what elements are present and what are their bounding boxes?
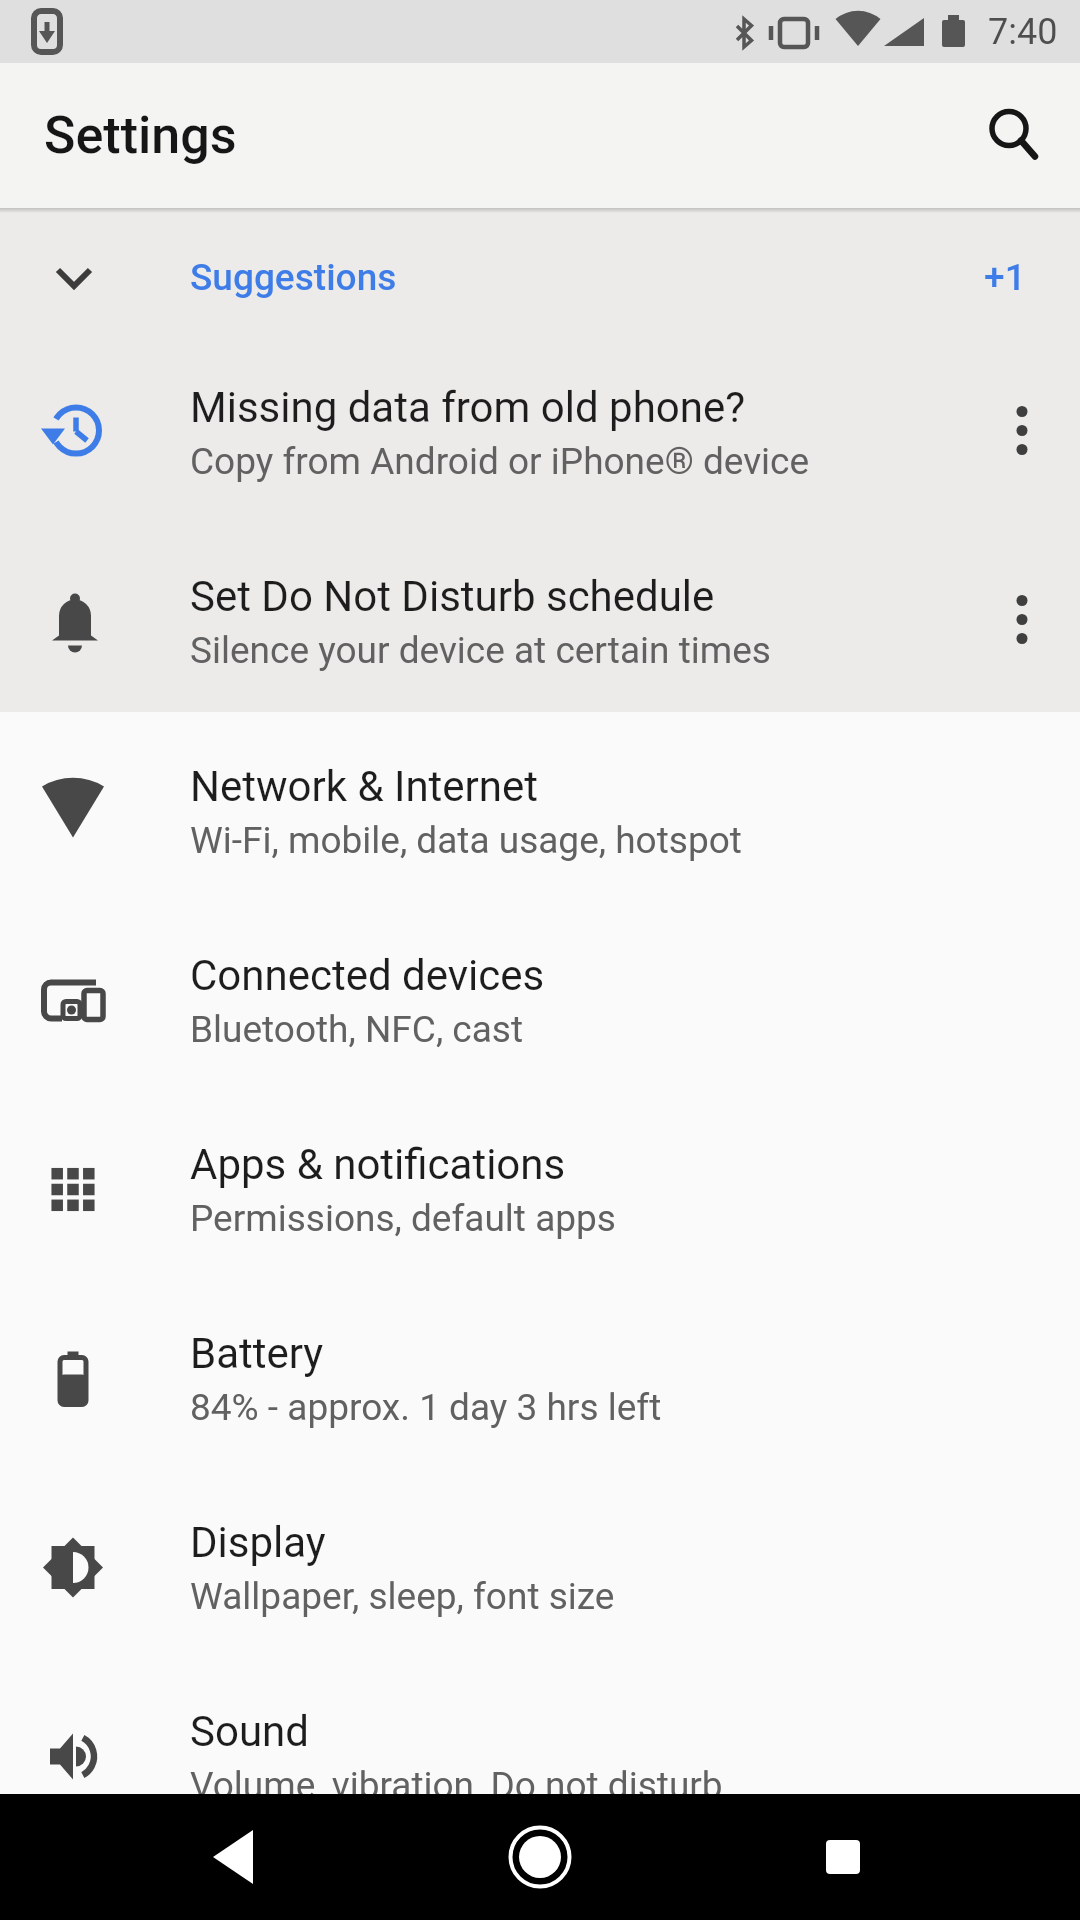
staticText: Sound (190, 1707, 309, 1756)
button[interactable]: Display (0, 1468, 1080, 1657)
button[interactable] (360, 1794, 720, 1920)
button[interactable]: Battery (0, 1279, 1080, 1468)
button[interactable]: Connected devices (0, 901, 1080, 1090)
staticText: Volume, vibration, Do not disturb (190, 1764, 723, 1807)
staticText: Wi-Fi, mobile, data usage, hotspot (190, 819, 742, 862)
button[interactable] (970, 63, 1080, 208)
staticText: 84% - approx. 1 day 3 hrs left (190, 1386, 662, 1429)
staticText: Permissions, default apps (190, 1197, 616, 1240)
staticText: Silence your device at certain times (190, 629, 771, 672)
staticText: Wallpaper, sleep, font size (190, 1575, 615, 1618)
button[interactable]: Sound (0, 1657, 1080, 1846)
staticText: Set Do Not Disturb schedule (190, 572, 715, 621)
button[interactable]: Missing data from old phone? (0, 334, 1080, 523)
button[interactable] (0, 1794, 360, 1920)
staticText: Apps & notifications (190, 1140, 566, 1189)
staticText: Network & Internet (190, 762, 539, 811)
staticText: Suggestions (190, 256, 397, 299)
button[interactable] (720, 1794, 1080, 1920)
staticText: Settings (44, 105, 237, 166)
staticText: Connected devices (190, 951, 545, 1000)
staticText: 7:40 (988, 11, 1058, 53)
button[interactable] (968, 334, 1080, 523)
button[interactable]: Network & Internet (0, 712, 1080, 901)
staticText: Missing data from old phone? (190, 383, 746, 432)
staticText: Copy from Android or iPhone® device (190, 440, 810, 483)
staticText: Battery (190, 1329, 324, 1378)
staticText: Display (190, 1518, 326, 1567)
staticText: Bluetooth, NFC, cast (190, 1008, 524, 1051)
staticText: +1 (984, 256, 1026, 299)
button[interactable] (968, 523, 1080, 712)
button[interactable]: Apps & notifications (0, 1090, 1080, 1279)
button[interactable]: Set Do Not Disturb schedule (0, 523, 1080, 712)
button[interactable]: Suggestions (0, 208, 1080, 334)
